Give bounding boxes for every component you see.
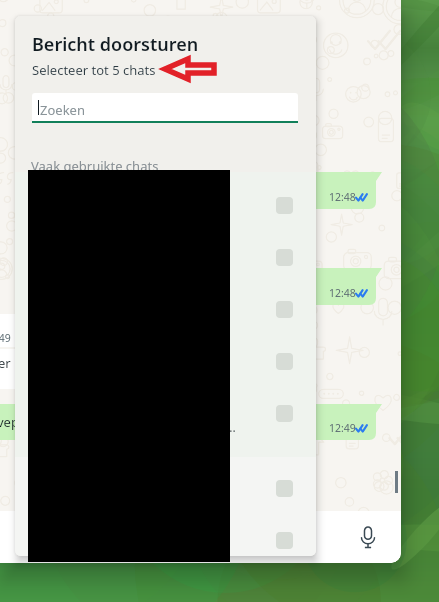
staticText: :49 xyxy=(0,331,11,345)
button[interactable]: Zoeken xyxy=(32,93,298,123)
staticText: 12:48 xyxy=(329,286,356,300)
staticText: er xyxy=(0,354,11,372)
button[interactable]: Select chat xyxy=(276,197,293,214)
staticText: at... xyxy=(215,419,236,435)
staticText: Vaak gebruikte chats xyxy=(31,157,159,175)
staticText: Zoeken xyxy=(40,101,85,119)
button[interactable]: Select chat xyxy=(276,532,293,549)
staticText: 12:49 xyxy=(329,421,356,435)
button[interactable]: Select chat xyxy=(276,301,293,318)
staticText: vep xyxy=(0,413,19,431)
staticText: Bericht doorsturen xyxy=(32,32,199,57)
staticText: 12:48 xyxy=(329,190,356,204)
staticText: Selecteer tot 5 chats xyxy=(32,61,156,79)
button[interactable]: Voice message xyxy=(355,524,381,550)
button[interactable]: Select chat xyxy=(276,405,293,422)
button[interactable]: Select chat xyxy=(276,480,293,497)
button[interactable]: Select chat xyxy=(276,353,293,370)
button[interactable]: Select chat xyxy=(276,249,293,266)
